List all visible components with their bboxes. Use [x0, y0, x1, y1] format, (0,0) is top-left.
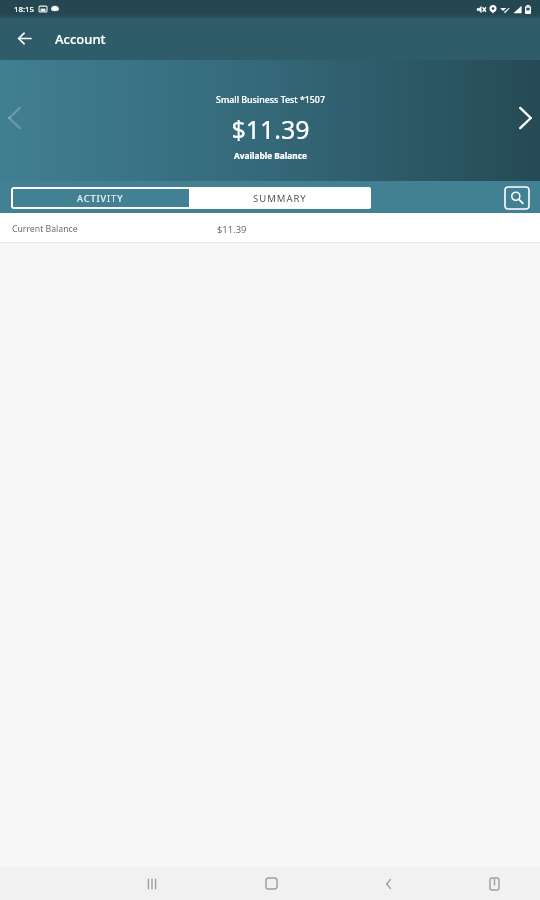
staticText: Available Balance [234, 150, 307, 161]
button[interactable]: Back [8, 17, 42, 59]
button[interactable]: Back [374, 867, 404, 900]
staticText: Current Balance [12, 223, 78, 235]
button[interactable]: Current Balance [0, 213, 540, 242]
staticText: Small Business Test *1507 [216, 94, 325, 106]
button[interactable]: SUMMARY [189, 187, 371, 209]
button[interactable]: Previous account [0, 98, 35, 138]
staticText: $11.39 [217, 223, 247, 236]
button[interactable]: Search [505, 187, 529, 209]
staticText: Account [55, 30, 106, 48]
button[interactable]: Next account [505, 98, 540, 138]
staticText: ACTIVITY [77, 192, 124, 205]
staticText: SUMMARY [253, 192, 307, 205]
button[interactable]: ACTIVITY [11, 187, 189, 209]
button[interactable]: Home [256, 867, 286, 900]
button[interactable]: Recent apps [137, 867, 167, 900]
button[interactable]: Hide keyboard [479, 867, 509, 900]
staticText: 18:15 [14, 4, 34, 15]
staticText: $11.39 [231, 112, 310, 146]
